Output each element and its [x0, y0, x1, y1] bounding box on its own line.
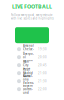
staticText: Man City [23, 60, 29, 67]
staticText: Spurs [23, 67, 30, 70]
staticText: 22:00 [38, 87, 47, 91]
staticText: Follow every goal, every minute [11, 13, 53, 17]
staticText: 20:45 [38, 63, 47, 67]
staticText: Liverpool [23, 52, 34, 59]
staticText: 21:00 [38, 71, 47, 75]
staticText: Dortmund [23, 87, 33, 94]
button[interactable]: Liverpool [15, 53, 49, 61]
button[interactable]: Man City [15, 61, 49, 69]
staticText: Valencia [23, 81, 34, 88]
staticText: 20:00 [38, 55, 47, 59]
staticText: Barcelona [23, 74, 33, 81]
staticText: Real Madrid [23, 68, 33, 75]
staticText: Everton [23, 59, 33, 62]
staticText: LIVE FOOTBALL [12, 3, 52, 10]
button[interactable]: Bayern [15, 85, 49, 93]
button[interactable]: Barcelona [15, 77, 49, 85]
staticText: Bayern [23, 84, 33, 87]
staticText: Sevilla [23, 75, 31, 78]
staticText: Arsenal [23, 44, 34, 47]
staticText: with live scores and highlights [10, 17, 53, 20]
button[interactable]: Real Madrid [15, 69, 49, 77]
staticText: 21:30 [38, 79, 47, 83]
staticText: Chelsea [23, 47, 34, 54]
staticText: 19:30 [38, 47, 47, 51]
button[interactable]: Arsenal [15, 45, 49, 53]
